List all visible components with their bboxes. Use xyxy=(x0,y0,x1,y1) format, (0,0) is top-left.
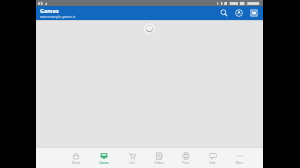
staticText: Orders xyxy=(154,161,164,165)
button[interactable]: Print xyxy=(172,148,199,168)
staticText: Home xyxy=(72,161,80,165)
button[interactable]: More xyxy=(226,148,253,168)
button[interactable]: Home xyxy=(62,148,90,168)
staticText: Chat xyxy=(209,161,216,165)
staticText: www.example.games.in xyxy=(40,15,76,19)
button[interactable]: Games xyxy=(90,148,118,168)
button[interactable]: Account xyxy=(233,7,245,19)
button[interactable]: Orders xyxy=(145,148,172,168)
button[interactable]: Cart xyxy=(118,148,145,168)
staticText: More xyxy=(236,161,243,165)
button[interactable]: Chat xyxy=(199,148,226,168)
staticText: Cart xyxy=(129,161,135,165)
staticText: Print xyxy=(182,161,189,165)
button[interactable]: Tabs xyxy=(248,7,260,19)
button[interactable]: Search xyxy=(218,7,230,19)
staticText: Games xyxy=(99,161,109,165)
staticText: Games xyxy=(40,7,59,14)
